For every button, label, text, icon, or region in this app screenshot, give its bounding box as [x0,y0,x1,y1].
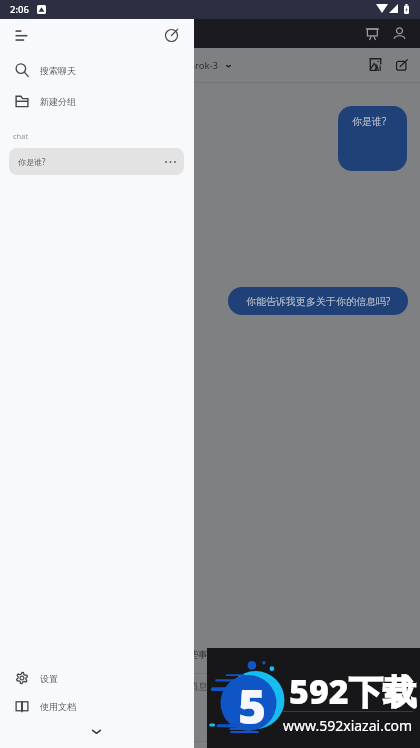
staticText: www.592xiazai.com [283,716,413,735]
staticText: chat [13,131,29,141]
button[interactable]: 搜索聊天 [0,56,194,84]
staticText: 592下载 [289,668,417,714]
staticText: 5 [238,673,267,738]
button[interactable]: 设置 [0,664,194,692]
button[interactable]: New chat [164,28,179,43]
staticText: 设置 [40,673,58,684]
staticText: 些事 [188,648,208,661]
button[interactable]: 使用文档 [0,692,194,720]
staticText: 使用文档 [40,701,76,712]
button[interactable]: Whiteboard [365,26,380,41]
staticText: 你能告诉我更多关于你的信息吗? [246,294,391,308]
button[interactable]: 你是谁? [9,148,184,175]
staticText: 新建分组 [40,96,76,107]
button[interactable]: AI image [369,58,382,71]
button[interactable]: Collapse [89,724,104,739]
staticText: Grok-3 [188,59,218,72]
staticText: 2:06 [10,3,29,16]
button[interactable]: New chat [395,59,408,72]
button[interactable]: 新建分组 [0,87,194,115]
staticText: 搜索聊天 [40,65,76,76]
staticText: 你是谁? [18,156,46,167]
staticText: 消息 [188,680,208,693]
button[interactable]: Menu [15,28,29,42]
button[interactable]: Account [392,26,407,41]
staticText: 你是谁? [352,114,387,128]
